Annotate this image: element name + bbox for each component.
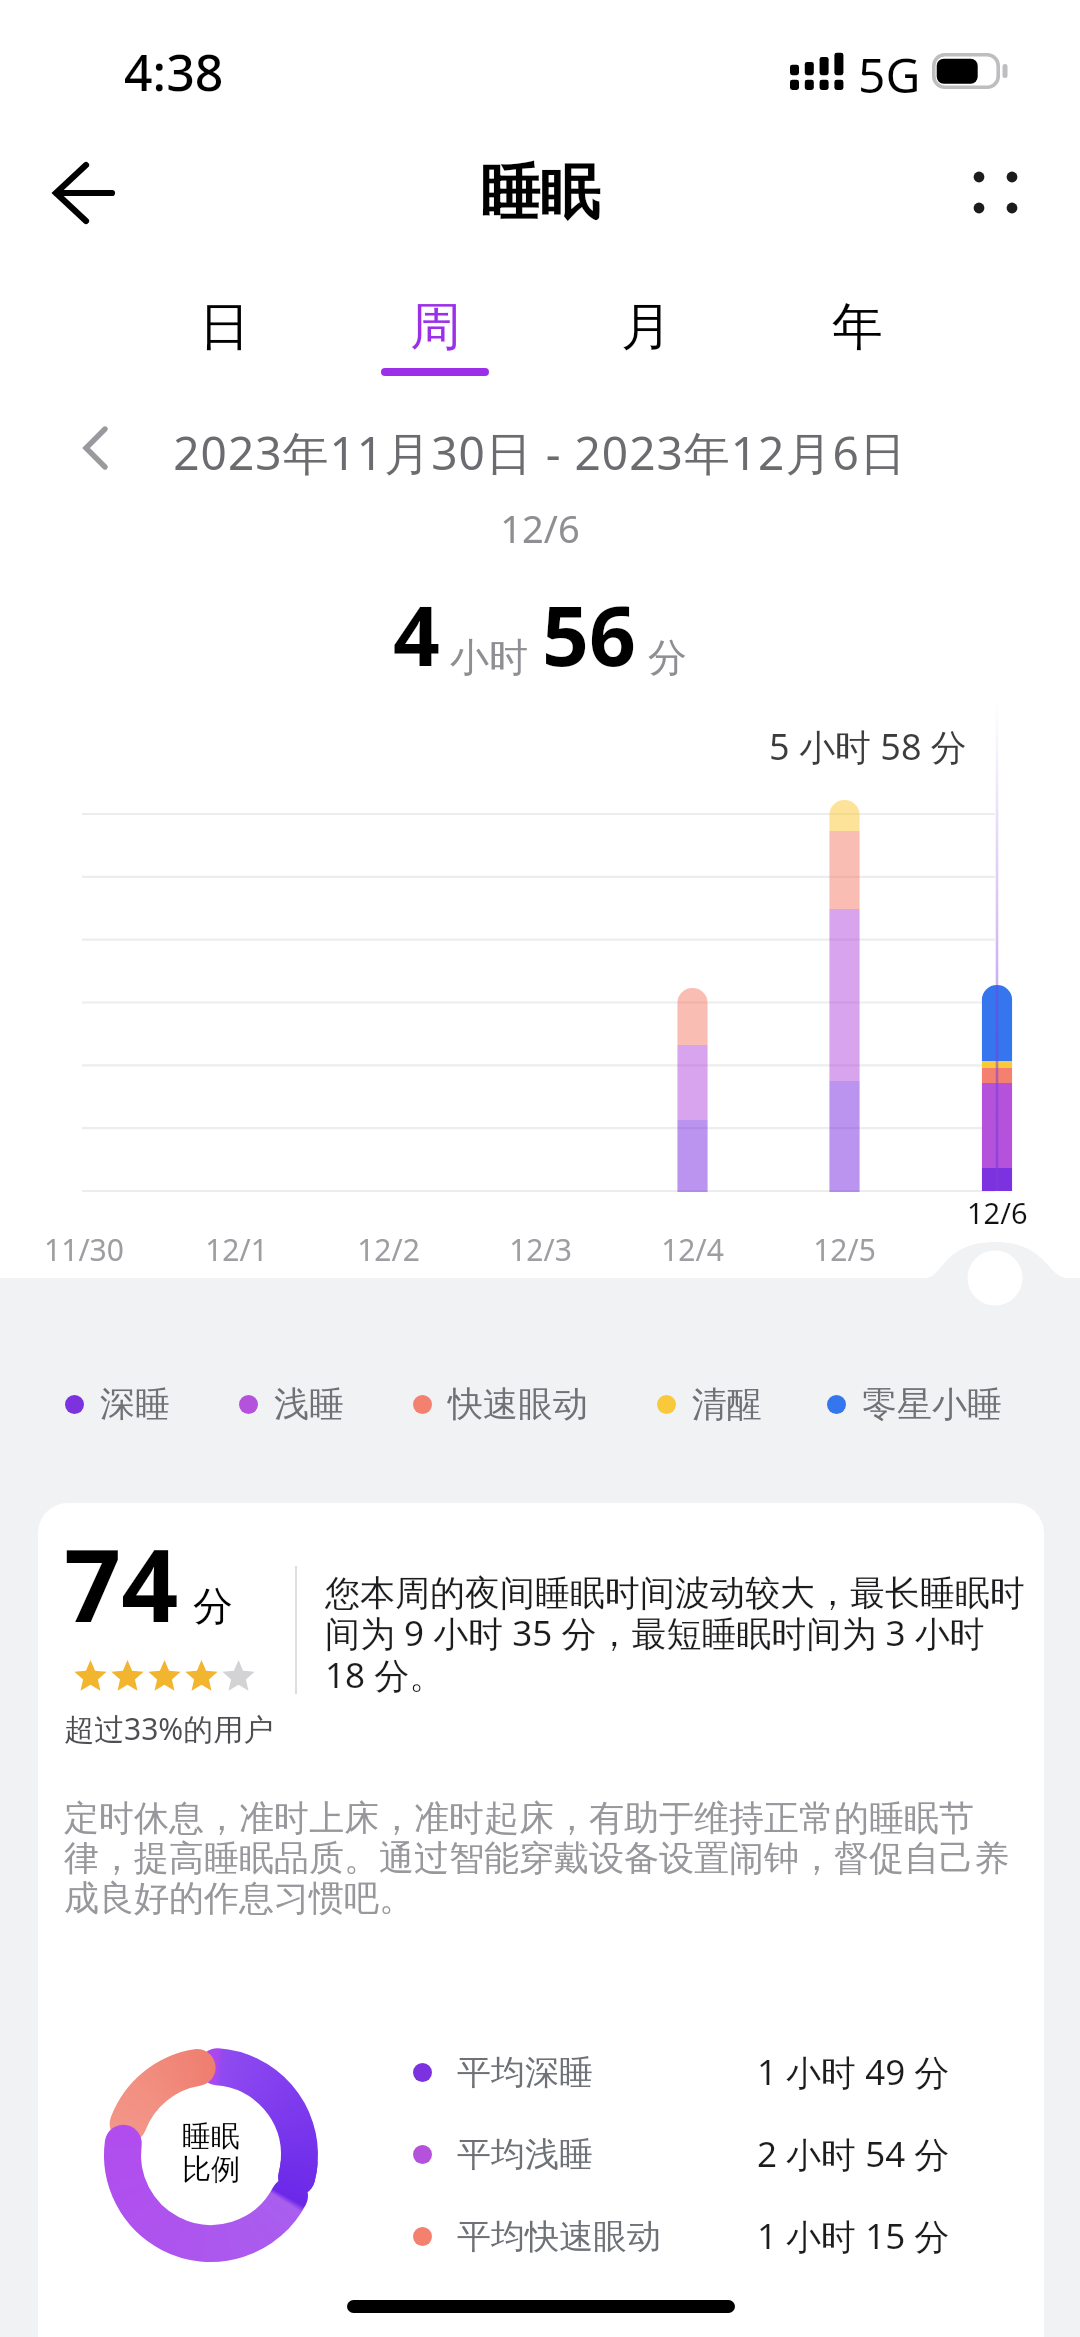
- staticText: 5 小时 58 分: [769, 722, 967, 771]
- staticText: 12/4: [661, 1229, 724, 1270]
- button[interactable]: 日: [118, 262, 329, 402]
- staticText: 12/6: [0, 502, 1080, 554]
- staticText: 平均快速眼动: [457, 2215, 661, 2258]
- staticText: 睡眠 比例: [104, 2118, 318, 2187]
- staticText: 平均浅睡: [457, 2133, 593, 2176]
- button[interactable]: 周: [329, 262, 540, 402]
- staticText: 4:38: [124, 38, 224, 106]
- staticText: 12/6: [967, 1193, 1028, 1232]
- staticText: 零星小睡: [862, 1382, 1002, 1426]
- staticText: 日: [199, 295, 250, 359]
- staticText: 年: [832, 295, 883, 359]
- staticText: 12/5: [813, 1229, 876, 1270]
- staticText: 2023年11月30日 - 2023年12月6日: [0, 421, 1080, 484]
- button[interactable]: More options: [955, 153, 1037, 235]
- staticText: 深睡: [100, 1382, 170, 1426]
- staticText: 11/30: [44, 1229, 124, 1270]
- button[interactable]: 月: [540, 262, 751, 402]
- button[interactable]: 平均快速眼动: [413, 2202, 950, 2270]
- staticText: 分: [193, 1581, 233, 1631]
- staticText: 2 小时 54 分: [757, 2130, 950, 2178]
- staticText: 1 小时 49 分: [757, 2048, 950, 2096]
- button[interactable]: 平均浅睡: [413, 2120, 950, 2188]
- staticText: 56: [542, 578, 636, 688]
- button[interactable]: 年: [751, 262, 962, 402]
- staticText: 12/3: [509, 1229, 572, 1270]
- staticText: 1 小时 15 分: [757, 2212, 950, 2260]
- staticText: 4: [393, 578, 440, 688]
- staticText: 月: [621, 295, 672, 359]
- staticText: 定时休息，准时上床，准时起床，有助于维持正常的睡眠节律，提高睡眠品质。通过智能穿…: [64, 1796, 1014, 1920]
- button[interactable]: 浅睡: [239, 1382, 344, 1426]
- staticText: 睡眠: [480, 155, 600, 231]
- staticText: 小时: [450, 633, 528, 682]
- button[interactable]: Back: [28, 136, 140, 248]
- staticText: 12/1: [205, 1229, 268, 1270]
- staticText: 您本周的夜间睡眠时间波动较大，最长睡眠时间为 9 小时 35 分，最短睡眠时间为…: [325, 1571, 1025, 1699]
- staticText: 周: [410, 295, 461, 359]
- staticText: 清醒: [692, 1382, 762, 1426]
- staticText: 快速眼动: [448, 1382, 588, 1426]
- staticText: 浅睡: [274, 1382, 344, 1426]
- staticText: 分: [648, 633, 687, 682]
- staticText: 平均深睡: [457, 2051, 593, 2094]
- button[interactable]: 零星小睡: [827, 1382, 1002, 1426]
- staticText: 12/2: [357, 1229, 420, 1270]
- button[interactable]: 深睡: [65, 1382, 170, 1426]
- button[interactable]: Previous week: [56, 418, 116, 478]
- button[interactable]: 快速眼动: [413, 1382, 588, 1426]
- staticText: 5G: [858, 42, 921, 107]
- button[interactable]: 平均深睡: [413, 2038, 950, 2106]
- staticText: 74: [64, 1515, 179, 1651]
- button[interactable]: 清醒: [657, 1382, 762, 1426]
- staticText: 超过33%的用户: [64, 1708, 274, 1749]
